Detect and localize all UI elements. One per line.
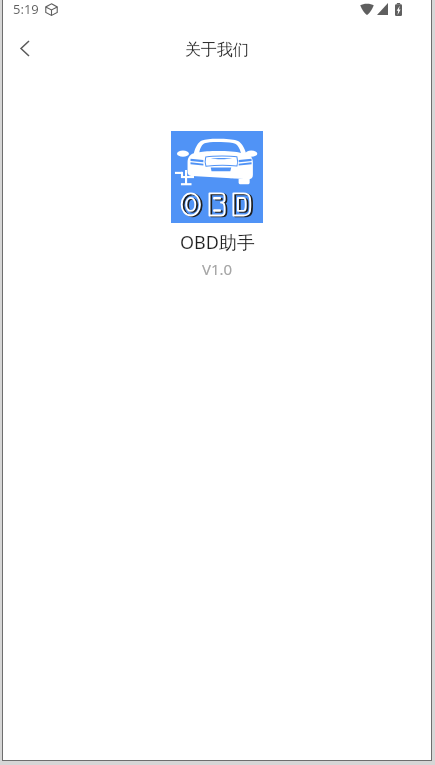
staticText: 5:19 (13, 0, 39, 18)
button[interactable]: Back (5, 28, 45, 68)
staticText: OBD助手 (180, 230, 255, 255)
staticText: V1.0 (202, 259, 233, 279)
staticText: 关于我们 (185, 40, 249, 60)
